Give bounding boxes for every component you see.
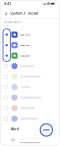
staticText: Nomenclature (4, 20, 21, 24)
staticText: Subscribe (20, 44, 29, 47)
button[interactable]: Stop recording (40, 124, 52, 136)
button[interactable]: Subsubuser (11, 50, 57, 61)
button[interactable] (4, 61, 56, 71)
staticText: 9:41 (4, 1, 11, 6)
button[interactable] (4, 113, 56, 124)
button[interactable] (4, 71, 56, 82)
staticText: Body Voice (20, 33, 30, 36)
button[interactable] (4, 103, 56, 113)
button[interactable]: Body Voice (11, 29, 57, 40)
staticText: › (22, 20, 23, 24)
button[interactable] (4, 82, 56, 92)
button[interactable]: Layers (8, 138, 17, 141)
staticText: System 3 · record (10, 11, 38, 15)
button[interactable] (4, 92, 56, 103)
button[interactable]: Subscribe (11, 40, 57, 50)
staticText: Subsubuser (20, 54, 30, 57)
staticText: Abcd (11, 127, 19, 131)
button[interactable]: System 3 · record (0, 8, 60, 18)
